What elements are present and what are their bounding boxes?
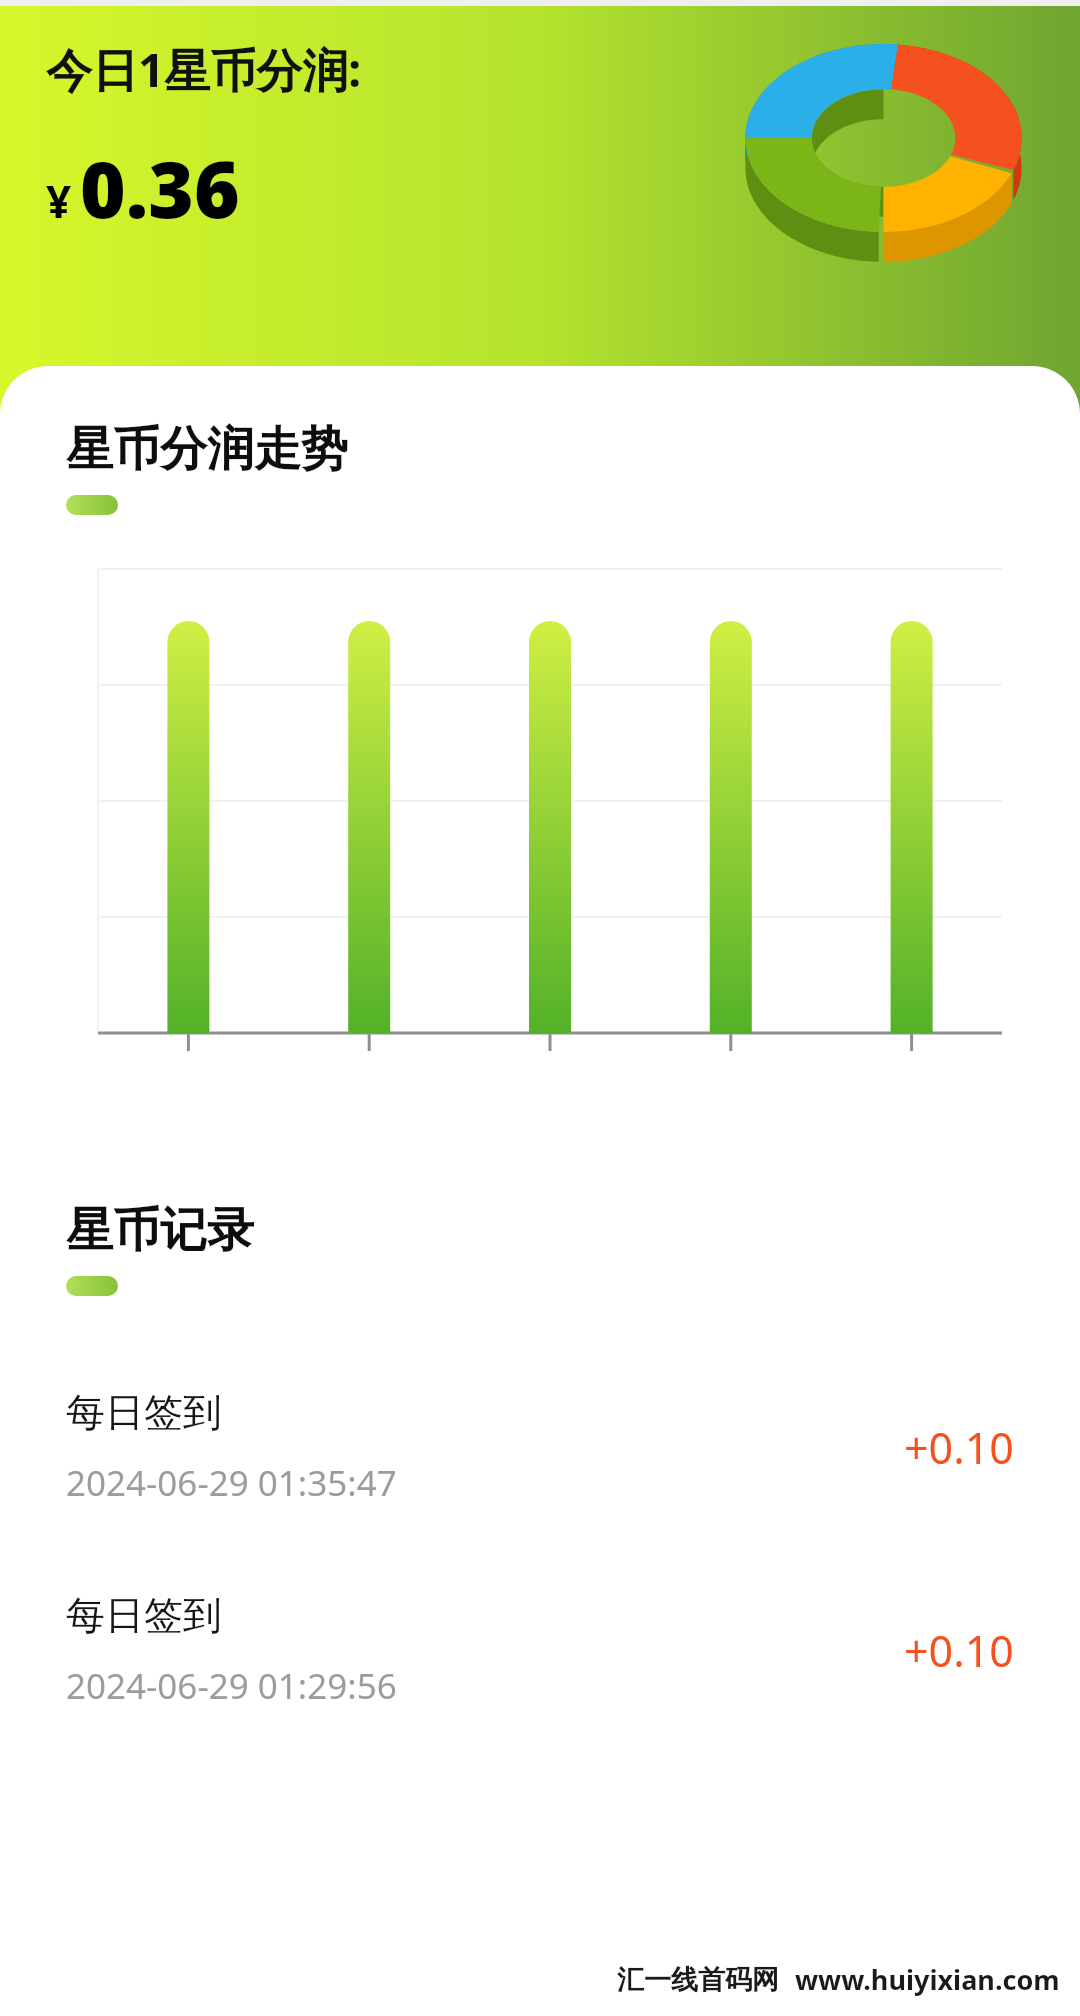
staticText: +0.10 xyxy=(904,1621,1014,1680)
staticText: +0.10 xyxy=(904,1418,1014,1477)
staticText: 汇一线首码网 xyxy=(617,1963,779,1997)
button[interactable]: 每日签到 xyxy=(0,1388,1080,1507)
staticText: 星币记录 xyxy=(66,1201,254,1260)
staticText: www.huiyixian.com xyxy=(795,1961,1060,1998)
staticText: 每日签到 xyxy=(66,1591,222,1640)
staticText: ¥ xyxy=(46,171,72,231)
button[interactable]: 每日签到 xyxy=(0,1591,1080,1710)
staticText: 每日签到 xyxy=(66,1388,222,1437)
staticText: 2024-06-29 01:35:47 xyxy=(66,1459,397,1507)
staticText: 今日1星币分润: xyxy=(46,38,362,101)
staticText: 0.36 xyxy=(80,135,240,241)
staticText: 星币分润走势 xyxy=(66,420,348,479)
other: Earnings distribution chart xyxy=(735,46,1032,258)
staticText: 2024-06-29 01:29:56 xyxy=(66,1662,397,1710)
